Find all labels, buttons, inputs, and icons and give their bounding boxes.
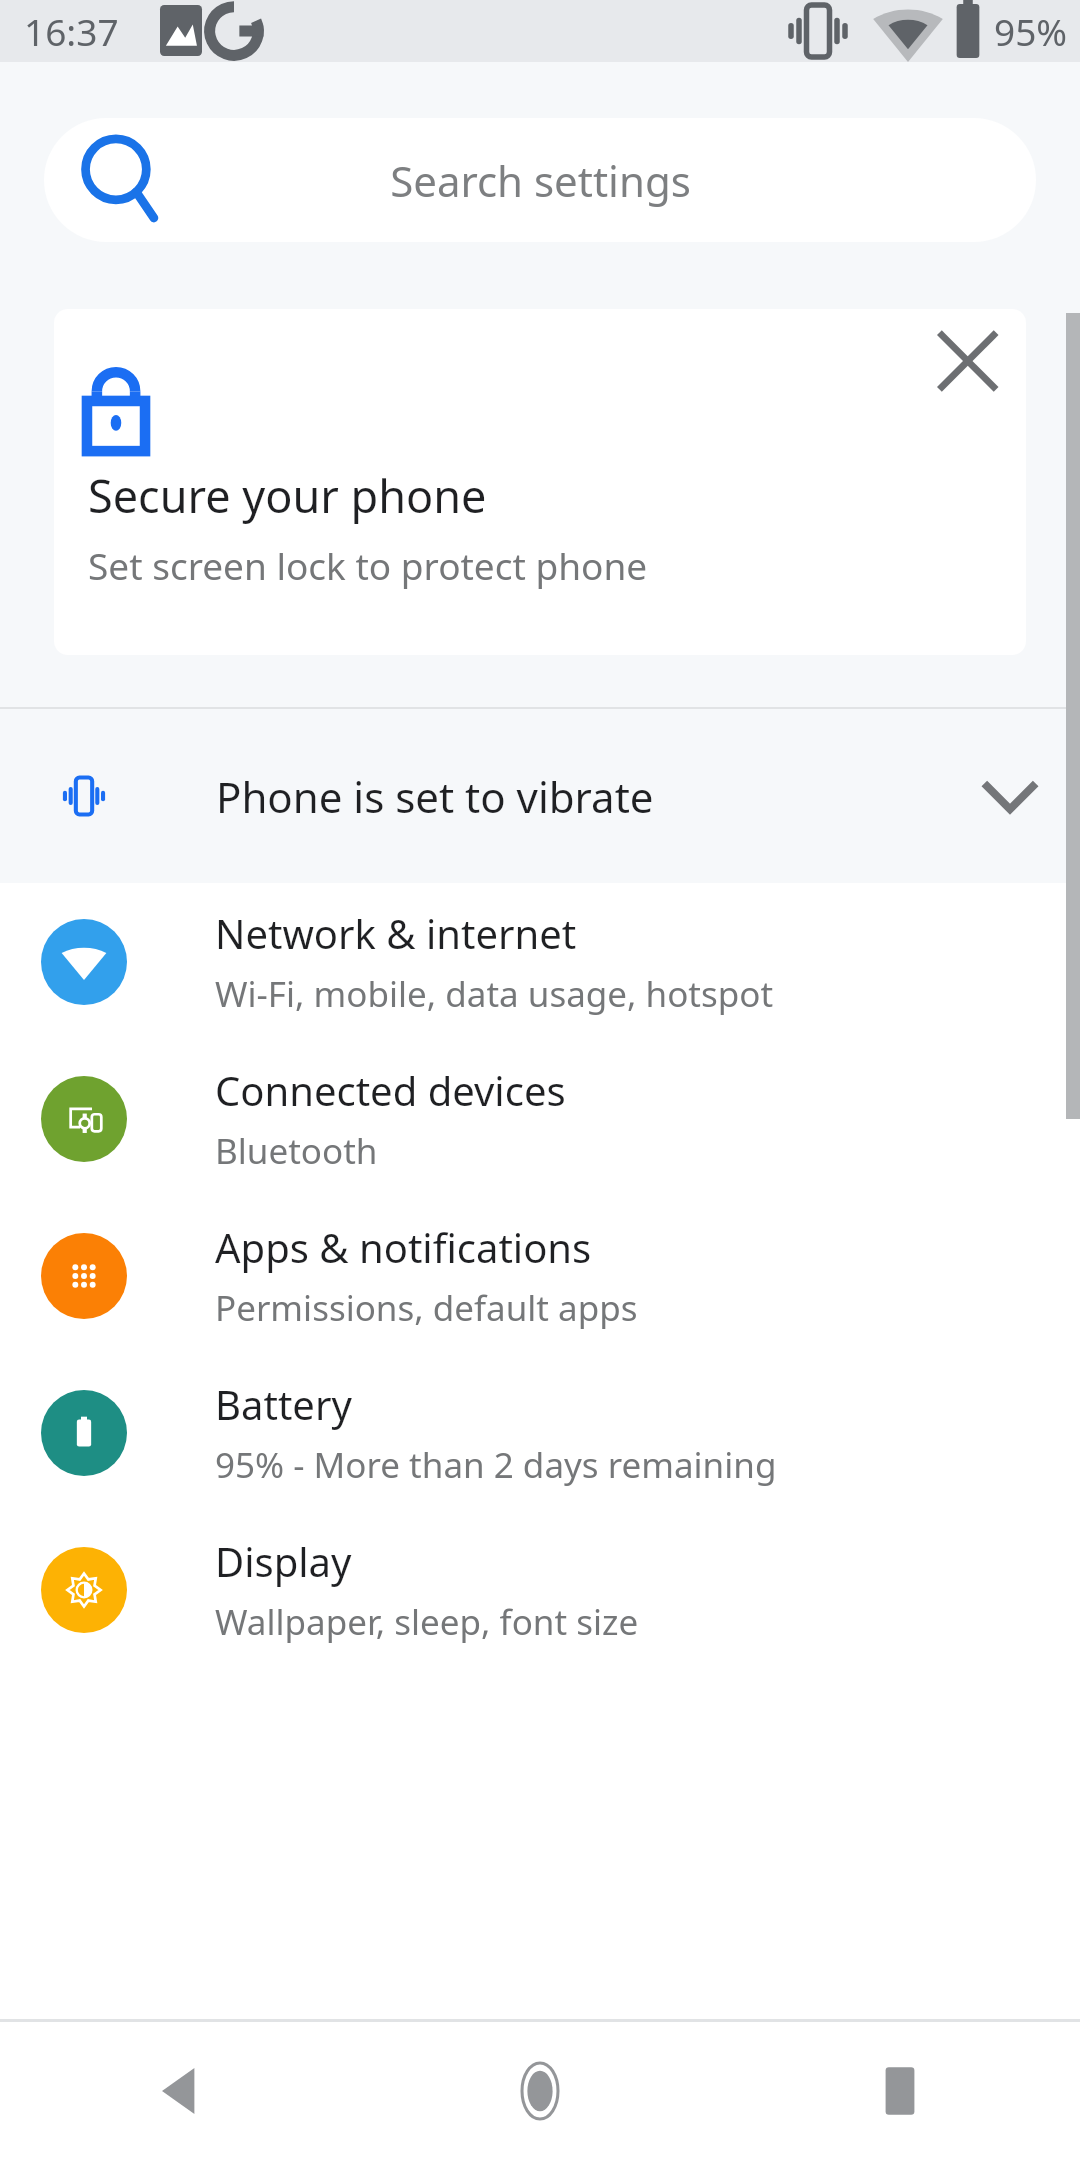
button[interactable]: Display bbox=[0, 1511, 1080, 1668]
button[interactable]: Connected devices bbox=[0, 1040, 1080, 1197]
button[interactable]: Home bbox=[360, 2022, 720, 2160]
staticText: 95% - More than 2 days remaining bbox=[215, 1441, 777, 1489]
staticText: 16:37 bbox=[24, 6, 119, 56]
staticText: 95% bbox=[994, 6, 1068, 56]
button[interactable]: Expand bbox=[966, 752, 1054, 840]
staticText: Permissions, default apps bbox=[215, 1284, 638, 1332]
button[interactable]: Phone is set to vibrate bbox=[0, 709, 1080, 883]
button[interactable]: Network & internet bbox=[0, 883, 1080, 1040]
staticText: Battery bbox=[215, 1377, 352, 1431]
button[interactable]: Apps & notifications bbox=[0, 1197, 1080, 1354]
button[interactable]: Recents bbox=[720, 2022, 1080, 2160]
staticText: Phone is set to vibrate bbox=[216, 768, 654, 825]
staticText: Wi-Fi, mobile, data usage, hotspot bbox=[215, 970, 774, 1018]
staticText: Bluetooth bbox=[215, 1127, 378, 1175]
staticText: Network & internet bbox=[215, 906, 577, 960]
button[interactable]: Dismiss bbox=[922, 309, 1026, 413]
button[interactable]: Dismiss bbox=[54, 309, 1026, 655]
button[interactable]: Search settings bbox=[44, 118, 1036, 242]
staticText: Apps & notifications bbox=[215, 1220, 592, 1274]
staticText: Wallpaper, sleep, font size bbox=[215, 1598, 639, 1646]
button[interactable]: Back bbox=[0, 2022, 360, 2160]
staticText: Search settings bbox=[390, 152, 691, 209]
staticText: Set screen lock to protect phone bbox=[88, 540, 648, 590]
staticText: Connected devices bbox=[215, 1063, 566, 1117]
button[interactable]: Battery bbox=[0, 1354, 1080, 1511]
staticText: Secure your phone bbox=[88, 465, 487, 526]
staticText: Display bbox=[215, 1534, 352, 1588]
